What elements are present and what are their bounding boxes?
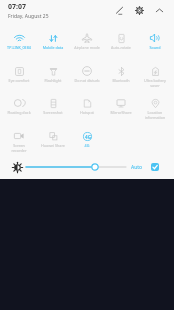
staticText: Ultra battery saver <box>138 78 172 88</box>
button[interactable]: Airplane mode <box>70 25 104 58</box>
staticText: Eye comfort <box>2 78 36 83</box>
button[interactable]: Do not disturb <box>70 58 104 91</box>
button[interactable]: Screenshot <box>36 90 70 123</box>
staticText: TP-LINK_0E84 <box>2 45 36 50</box>
button[interactable]: Settings <box>129 0 149 20</box>
staticText: MirrorShare <box>104 110 138 115</box>
staticText: Hotspot <box>70 110 104 115</box>
button[interactable]: Mobile data <box>36 25 70 58</box>
button[interactable]: Sound <box>138 25 172 58</box>
button[interactable]: MirrorShare <box>104 90 138 123</box>
button[interactable]: Auto-rotate <box>104 25 138 58</box>
button[interactable]: Collapse <box>149 0 169 20</box>
staticText: Sound <box>138 45 172 50</box>
button[interactable]: Floating dock <box>2 90 36 123</box>
staticText: Floating dock <box>2 110 36 115</box>
staticText: Huawei Share <box>36 143 70 148</box>
button[interactable]: Bluetooth <box>104 58 138 91</box>
button[interactable]: Edit <box>109 0 129 20</box>
staticText: Auto <box>131 164 143 171</box>
button[interactable]: TP-LINK_0E84 <box>2 25 36 58</box>
staticText: Airplane mode <box>70 45 104 50</box>
staticText: 4G <box>85 134 91 140</box>
button[interactable]: Huawei Share <box>36 123 70 156</box>
staticText: Bluetooth <box>104 78 138 83</box>
button[interactable]: Location information <box>138 90 172 123</box>
button[interactable]: Eye comfort <box>2 58 36 91</box>
button[interactable]: Flashlight <box>36 58 70 91</box>
staticText: Friday, August 25 <box>8 13 49 20</box>
button[interactable]: Ultra battery saver <box>138 58 172 91</box>
staticText: 07:07 <box>8 2 26 12</box>
staticText: Do not disturb <box>70 78 104 83</box>
staticText: Screenshot <box>36 110 70 115</box>
button[interactable]: Auto brightness <box>151 163 159 171</box>
staticText: 4G <box>70 143 104 148</box>
staticText: Screen recorder <box>2 143 36 153</box>
button[interactable]: Screen recorder <box>2 123 36 156</box>
staticText: Mobile data <box>36 45 70 50</box>
staticText: Flashlight <box>36 78 70 83</box>
button[interactable]: Hotspot <box>70 90 104 123</box>
staticText: Auto-rotate <box>104 45 138 50</box>
button[interactable]: 4G <box>70 123 104 156</box>
staticText: Location information <box>138 110 172 120</box>
